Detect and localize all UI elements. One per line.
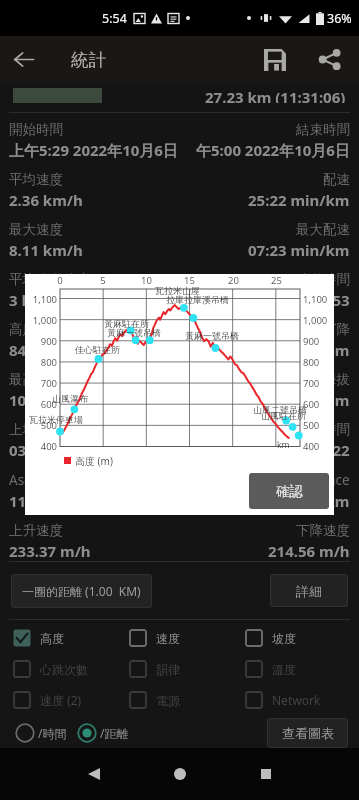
staticText: 瓦拉米山屋 [155,285,200,296]
staticText: 上升速度 [9,522,63,539]
button[interactable]: Save [251,36,298,83]
staticText: 黃麻駐在所 [104,318,149,329]
button[interactable]: 一圈的距離 (1.00 KM) [11,574,152,608]
button[interactable]: 電源 [129,686,180,714]
staticText: 03:22 [311,440,350,460]
staticText: 900 [303,335,320,348]
button[interactable]: 韻律 [129,655,180,683]
staticText: 5:54 [102,10,127,27]
staticText: 溫度 [272,662,296,677]
staticText: 一圈的距離 (1.00 KM) [22,583,141,599]
staticText: 400 [303,440,320,453]
staticText: 移動時間 [296,271,350,288]
staticText: km [277,439,290,451]
button[interactable]: 查看圖表 [267,718,348,748]
staticText: 查看圖表 [282,725,334,741]
staticText: 800 [303,356,320,369]
staticText: 韻律 [156,662,180,677]
staticText: 1030 m [9,390,62,410]
staticText: 25:22 min/km [248,190,350,210]
staticText: 214.56 m/h [268,541,350,561]
button[interactable]: Back [66,748,122,800]
staticText: 開始時間 [9,121,63,138]
staticText: 3 km/h [9,290,62,310]
button[interactable]: /距離 [77,718,129,748]
staticText: 午5:00 2022年10月6日 [196,140,350,160]
staticText: 5 [100,274,106,287]
staticText: 確認 [276,483,303,500]
button[interactable]: 溫度 [245,655,296,683]
staticText: 27.23 km (11:31:06) [205,87,346,103]
staticText: 412 m [305,390,350,410]
staticText: 09:45 min/km [248,491,350,511]
button[interactable]: Back [0,36,47,83]
staticText: 高度 (m) [75,454,113,468]
staticText: /距離 [100,725,129,741]
staticText: 結束時間 [296,121,350,138]
staticText: 黃麻一號吊橋 [185,330,239,341]
staticText: 700 [40,377,57,390]
staticText: 0 [57,274,63,287]
staticText: 最高海拔 [9,371,63,388]
staticText: 8.11 km/h [9,240,83,260]
staticText: 佳心駐在所 [75,344,120,355]
staticText: 山風駐在所 [261,410,306,421]
button[interactable]: /時間 [15,718,67,748]
staticText: 配速 [323,171,350,188]
button[interactable]: Share [306,36,353,83]
staticText: 700 [303,377,320,390]
staticText: 坡度 [272,631,296,646]
staticText: 1,100 [303,293,328,306]
staticText: 07:23 min/km [248,240,350,260]
staticText: 500 [40,419,57,432]
button[interactable]: 確認 [249,473,329,509]
staticText: 600 [303,398,320,411]
staticText: 高度下降 [296,321,350,338]
button[interactable]: 高度 [13,624,64,652]
staticText: 瓦拉米停車場 [29,414,83,425]
staticText: 黃麻一號吊橋 [107,327,161,338]
button[interactable]: 心跳次數 [13,655,88,683]
staticText: 2.36 km/h [9,190,83,210]
staticText: 500 [303,419,320,432]
staticText: 1,100 [32,293,57,306]
staticText: 上坡時間 [9,421,63,438]
staticText: 最大配速 [296,221,350,238]
staticText: 詳細 [296,583,322,599]
button[interactable]: 速度 (2) [13,686,82,714]
staticText: 平均移動速度 [9,271,90,288]
staticText: Descent Pace [265,471,350,489]
staticText: 11:32 min/km [9,491,111,511]
staticText: 上午5:29 2022年10月6日 [9,140,178,160]
staticText: 速度 [156,631,180,646]
staticText: 10 [141,274,152,287]
staticText: 25 [271,274,282,287]
staticText: 15 [184,274,195,287]
staticText: 下降速度 [296,522,350,539]
staticText: 600 [40,398,57,411]
staticText: Network [272,692,321,708]
staticText: 900 [40,335,57,348]
staticText: 10:53 [311,290,350,310]
staticText: 03:41 [9,440,48,460]
staticText: 電源 [156,693,180,708]
button[interactable]: Recents [238,748,294,800]
button[interactable]: Network [245,686,321,714]
button[interactable]: 1,100 [25,274,334,515]
button[interactable]: 速度 [129,624,180,652]
staticText: 1,000 [303,314,328,327]
button[interactable]: 詳細 [270,574,348,607]
staticText: 統計 [71,49,106,71]
staticText: 400 [40,440,57,453]
staticText: 心跳次數 [40,662,88,677]
button[interactable]: 坡度 [245,624,296,652]
staticText: 最大速度 [9,221,63,238]
staticText: 平均速度 [9,171,63,188]
staticText: 1,000 [32,314,57,327]
staticText: /時間 [38,725,67,741]
button[interactable]: Home [152,748,208,800]
staticText: 800 [40,356,57,369]
staticText: 20 [228,274,239,287]
staticText: 851 m [305,340,350,360]
staticText: 高度 [40,631,64,646]
